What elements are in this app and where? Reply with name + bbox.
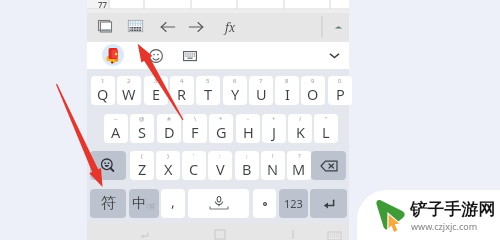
button[interactable]: Space [188,189,249,218]
staticText: fx [225,19,236,35]
staticText: R [177,84,187,104]
staticText: 0 [338,77,342,85]
button[interactable]: Back [158,17,178,37]
staticText: * [219,115,223,123]
staticText: 2 [127,77,131,85]
staticText: \ [194,115,197,123]
staticText: : [219,152,221,160]
button[interactable]: / [288,114,312,143]
staticText: @ [139,115,145,123]
button[interactable]: Backspace [311,151,346,180]
button[interactable]: - [236,114,260,143]
button[interactable]: 4 [170,76,194,105]
staticText: + [272,115,276,123]
staticText: 7 [259,77,263,85]
staticText: 1 [101,77,105,85]
staticText: T [204,84,213,104]
staticText: W [122,84,136,104]
staticText: Q [97,84,109,104]
staticText: 6 [233,77,237,85]
button[interactable]: ( [130,151,154,180]
staticText: 77 [98,0,108,10]
button[interactable]: Period [253,189,276,218]
button[interactable]: Numbers [279,189,308,218]
staticText: M [292,159,306,179]
button[interactable]: 0 [328,76,352,105]
button[interactable]: + [262,114,286,143]
button[interactable]: Function [220,17,240,37]
button[interactable]: Forward [186,17,206,37]
button[interactable]: 3 [144,76,168,105]
staticText: O [307,84,319,104]
staticText: U [256,84,267,104]
staticText: ; [246,152,248,160]
staticText: L [322,122,330,142]
staticText: Z [138,159,147,179]
button[interactable]: Keyboard layout [181,47,198,64]
button[interactable]: 5 [196,76,220,105]
button[interactable]: Collapse [328,17,348,37]
staticText: 4 [180,77,184,85]
button[interactable]: Window [96,17,114,35]
button[interactable]: ! [261,151,285,180]
button[interactable]: Comma [161,189,185,218]
button[interactable]: " [314,114,338,143]
button[interactable]: Keyboard [126,17,144,35]
staticText: 铲子手游网 [410,199,495,220]
button[interactable]: ) [156,151,180,180]
staticText: ' [193,152,195,160]
staticText: ? [298,152,301,160]
button[interactable]: 8 [275,76,299,105]
button[interactable]: Back [136,226,152,240]
staticText: I [285,84,290,104]
staticText: ~ [114,115,118,123]
staticText: 3 [154,77,158,85]
staticText: V [216,159,225,179]
button[interactable]: : [208,151,232,180]
button[interactable]: @ [130,114,154,143]
button[interactable]: Home [212,226,228,240]
staticText: E [152,84,161,104]
button[interactable]: ~ [104,114,128,143]
button[interactable]: # [157,114,181,143]
button[interactable]: ; [235,151,259,180]
staticText: /英 [146,202,156,212]
button[interactable]: Chinese English toggle [129,189,159,218]
button[interactable]: Enter [310,189,347,218]
button[interactable]: 2 [117,76,141,105]
button[interactable]: * [209,114,233,143]
button[interactable]: Emoji [147,47,164,64]
staticText: www.czjxjc.com [411,220,478,232]
button[interactable]: \ [183,114,207,143]
staticText: 123 [284,196,303,211]
button[interactable]: ? [287,151,311,180]
button[interactable]: 1 [91,76,115,105]
staticText: Y [231,84,240,104]
button[interactable]: 9 [301,76,325,105]
staticText: C [189,159,199,179]
button[interactable]: Search [90,151,126,180]
staticText: S [138,122,146,142]
button[interactable]: Hide keyboard [324,45,344,65]
staticText: D [164,122,175,142]
staticText: / [299,115,302,123]
button[interactable]: ' [182,151,206,180]
button[interactable]: 6 [223,76,247,105]
staticText: 9 [311,77,315,85]
button[interactable]: Sticker [102,44,124,66]
staticText: 符 [101,194,116,213]
staticText: N [267,159,279,179]
button[interactable]: 7 [249,76,273,105]
staticText: 8 [285,77,289,85]
button[interactable]: Recents [285,226,301,240]
button[interactable]: Symbols [90,189,126,218]
staticText: # [167,115,171,123]
staticText: P [336,84,345,104]
staticText: 5 [206,77,210,85]
staticText: K [296,122,305,142]
staticText: H [243,122,254,142]
staticText: ) [167,152,169,160]
button[interactable]: Keyboard [326,226,343,240]
staticText: F [191,122,199,142]
staticText: A [111,122,121,142]
